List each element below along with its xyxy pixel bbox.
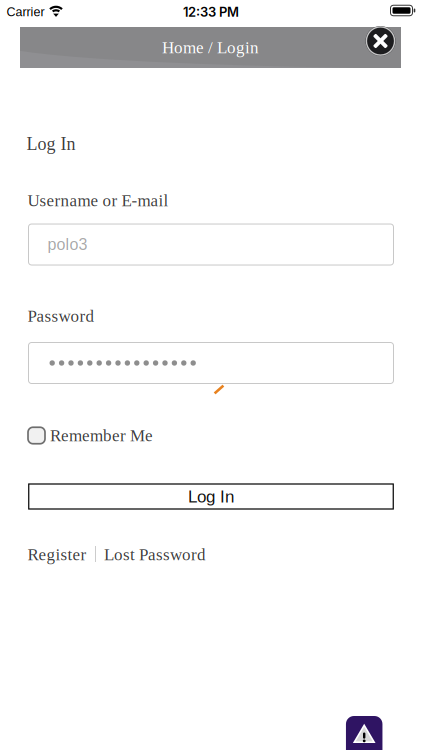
button[interactable]: Register — [27, 545, 86, 564]
staticText: Carrier — [6, 5, 44, 19]
staticText: Username or E-mail — [27, 191, 168, 210]
staticText: Remember Me — [50, 426, 153, 445]
staticText: Register — [27, 545, 86, 564]
staticText: Lost Password — [104, 545, 206, 564]
staticText: Home / Login — [162, 38, 259, 57]
button[interactable]: Password — [28, 342, 393, 383]
button[interactable]: Alert — [346, 716, 382, 750]
button[interactable]: Username or E-mail — [28, 224, 393, 265]
staticText: 12:33 PM — [183, 4, 239, 20]
button[interactable]: Log In — [29, 484, 393, 509]
staticText: Log In — [26, 134, 75, 154]
staticText: polo3 — [47, 236, 87, 253]
button[interactable]: Remember Me — [28, 426, 153, 445]
button[interactable]: Close — [365, 26, 395, 56]
button[interactable]: Lost Password — [104, 545, 206, 564]
staticText: Password — [27, 307, 94, 325]
staticText: Log In — [188, 487, 234, 506]
